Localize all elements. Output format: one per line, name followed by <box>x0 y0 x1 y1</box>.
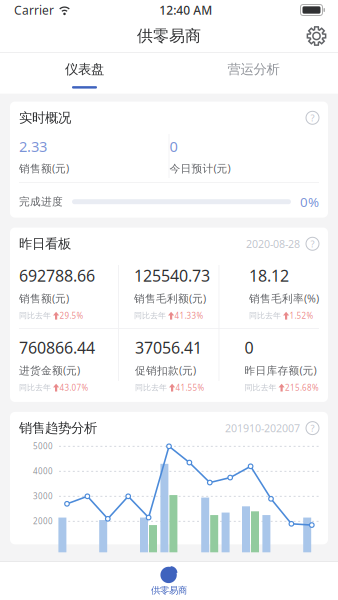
staticText: 同比去年 <box>135 383 167 392</box>
staticText: 同比去年 <box>249 311 281 321</box>
staticText: 29.5% <box>59 310 83 321</box>
staticText: 41.33% <box>174 310 203 321</box>
staticText: 昨日库存额(元) <box>244 363 316 377</box>
staticText: 12:40 AM <box>159 2 212 18</box>
staticText: 同比去年 <box>244 383 276 392</box>
staticText: 昨日看板 <box>19 236 71 252</box>
staticText: 今日预计(元) <box>169 161 230 175</box>
staticText: 营运分析 <box>227 61 279 78</box>
staticText: 760866.44 <box>19 337 95 358</box>
staticText: 692788.66 <box>19 265 95 286</box>
button[interactable]: 仪表盘 <box>0 53 169 94</box>
staticText: 43.07% <box>59 382 88 393</box>
staticText: 同比去年 <box>19 383 51 392</box>
staticText: ? <box>310 422 314 434</box>
staticText: 0 <box>169 137 177 156</box>
staticText: 37056.41 <box>135 337 202 358</box>
staticText: Carrier <box>14 2 54 18</box>
button[interactable]: 营运分析 <box>169 53 338 94</box>
staticText: 125540.73 <box>134 265 210 286</box>
staticText: 同比去年 <box>19 311 51 321</box>
staticText: 实时概况 <box>19 110 71 126</box>
staticText: 销售毛利额(元) <box>134 291 206 305</box>
staticText: 促销扣款(元) <box>135 363 196 377</box>
button[interactable]: 设置 <box>306 25 338 46</box>
staticText: 供零易商 <box>151 584 187 596</box>
staticText: 1.52% <box>289 310 313 321</box>
staticText: 18.12 <box>249 265 289 286</box>
staticText: 0% <box>300 193 319 211</box>
staticText: 41.55% <box>175 382 204 393</box>
staticText: 同比去年 <box>134 311 166 321</box>
staticText: 201910-202007 <box>225 421 300 435</box>
button[interactable]: 供零易商 <box>0 561 338 600</box>
staticText: 供零易商 <box>137 26 201 46</box>
staticText: 销售额(元) <box>19 291 69 305</box>
staticText: 215.68% <box>285 382 319 393</box>
staticText: 仪表盘 <box>65 61 104 78</box>
staticText: 2020-08-28 <box>246 237 300 251</box>
staticText: 0 <box>244 337 253 358</box>
staticText: 进货金额(元) <box>19 363 80 377</box>
staticText: 2000 <box>33 516 53 526</box>
staticText: ? <box>310 238 314 250</box>
staticText: 4000 <box>33 466 53 476</box>
staticText: 销售毛利率(%) <box>249 291 319 305</box>
staticText: ? <box>310 112 314 124</box>
staticText: 销售趋势分析 <box>19 420 97 436</box>
staticText: 5000 <box>33 441 53 451</box>
staticText: 销售额(元) <box>19 161 69 175</box>
staticText: 2.33 <box>19 137 47 156</box>
staticText: 3000 <box>33 491 53 501</box>
staticText: 完成进度 <box>19 195 63 208</box>
